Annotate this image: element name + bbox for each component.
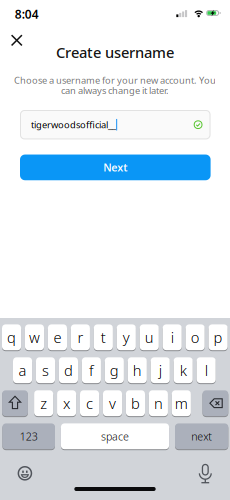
- button[interactable]: Dictate: [196, 462, 215, 484]
- button[interactable]: l: [197, 357, 216, 383]
- button[interactable]: next: [175, 423, 228, 449]
- staticText: h: [133, 360, 142, 380]
- button[interactable]: q: [2, 324, 21, 350]
- staticText: q: [7, 328, 16, 347]
- staticText: m: [175, 393, 188, 413]
- button[interactable]: 123: [2, 423, 55, 449]
- staticText: Choose a username for your new account. …: [14, 74, 216, 86]
- button[interactable]: Delete: [202, 390, 228, 416]
- staticText: y: [123, 328, 130, 347]
- button[interactable]: i: [163, 324, 182, 350]
- staticText: Next: [103, 160, 127, 174]
- button[interactable]: Next: [20, 155, 211, 180]
- button[interactable]: Shift: [2, 390, 28, 416]
- staticText: 8:04: [15, 6, 39, 22]
- staticText: a: [19, 360, 27, 380]
- staticText: c: [86, 393, 93, 413]
- staticText: t: [101, 328, 106, 347]
- staticText: v: [109, 393, 116, 413]
- staticText: 123: [20, 429, 38, 443]
- button[interactable]: s: [36, 357, 55, 383]
- staticText: can always change it later.: [61, 84, 169, 97]
- staticText: n: [154, 393, 163, 413]
- staticText: j: [159, 360, 162, 380]
- button[interactable]: n: [149, 390, 168, 416]
- button[interactable]: g: [105, 357, 124, 383]
- staticText: next: [191, 429, 212, 443]
- button[interactable]: Close: [11, 34, 23, 46]
- staticText: b: [131, 393, 140, 413]
- staticText: d: [64, 360, 73, 380]
- button[interactable]: z: [34, 390, 53, 416]
- staticText: o: [191, 328, 200, 347]
- staticText: p: [214, 328, 223, 347]
- staticText: x: [63, 393, 70, 413]
- staticText: e: [53, 328, 61, 347]
- staticText: s: [42, 360, 49, 380]
- staticText: g: [110, 360, 119, 380]
- button[interactable]: Emoji: [17, 465, 33, 481]
- button[interactable]: u: [140, 324, 159, 350]
- button[interactable]: h: [128, 357, 147, 383]
- staticText: tigerwoodsofficial__: [31, 118, 116, 131]
- button[interactable]: b: [126, 390, 145, 416]
- button[interactable]: y: [117, 324, 136, 350]
- staticText: z: [40, 393, 47, 413]
- button[interactable]: e: [48, 324, 67, 350]
- button[interactable]: d: [59, 357, 78, 383]
- button[interactable]: t: [94, 324, 113, 350]
- button[interactable]: p: [209, 324, 228, 350]
- button[interactable]: o: [186, 324, 205, 350]
- staticText: k: [180, 360, 187, 380]
- button[interactable]: r: [71, 324, 90, 350]
- staticText: space: [101, 429, 129, 443]
- staticText: u: [145, 328, 154, 347]
- button[interactable]: f: [82, 357, 101, 383]
- button[interactable]: m: [172, 390, 191, 416]
- button[interactable]: a: [13, 357, 32, 383]
- button[interactable]: j: [151, 357, 170, 383]
- button[interactable]: c: [80, 390, 99, 416]
- button[interactable]: v: [103, 390, 122, 416]
- button[interactable]: x: [57, 390, 76, 416]
- staticText: l: [205, 360, 208, 380]
- staticText: f: [89, 360, 94, 380]
- staticText: w: [29, 328, 40, 347]
- button[interactable]: w: [25, 324, 44, 350]
- staticText: r: [77, 328, 83, 347]
- button[interactable]: k: [174, 357, 193, 383]
- button[interactable]: space: [61, 423, 169, 449]
- staticText: Create username: [56, 43, 174, 62]
- staticText: i: [171, 328, 174, 347]
